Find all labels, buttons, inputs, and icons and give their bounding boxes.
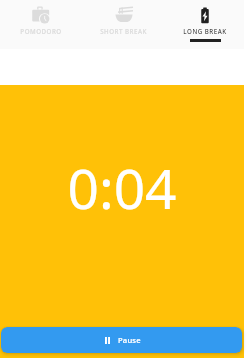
staticText: SHORT BREAK <box>100 27 147 35</box>
button[interactable]: POMODORO <box>0 0 82 42</box>
staticText: 0:04 <box>67 150 177 225</box>
button[interactable]: LONG BREAK <box>164 0 246 42</box>
button[interactable]: SHORT BREAK <box>82 0 164 42</box>
button[interactable]: Pause <box>1 327 242 353</box>
staticText: POMODORO <box>20 27 62 35</box>
staticText: Pause <box>118 335 141 345</box>
staticText: LONG BREAK <box>183 27 227 35</box>
